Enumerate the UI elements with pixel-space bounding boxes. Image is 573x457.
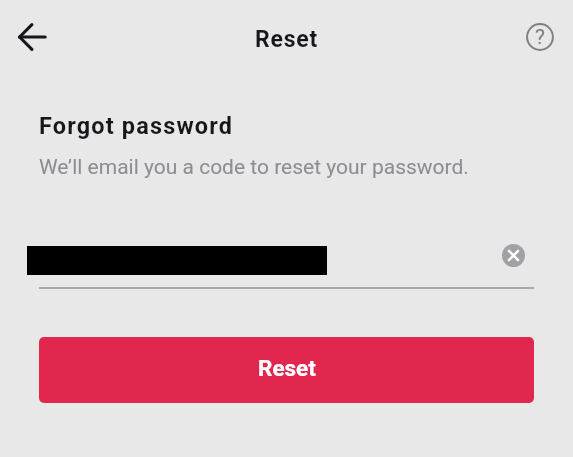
button[interactable]: Email address field (39, 231, 534, 287)
staticText: We’ll email you a code to reset your pas… (39, 155, 469, 180)
button[interactable]: Clear text (496, 238, 530, 272)
staticText: Forgot password (39, 112, 234, 140)
button[interactable]: Back (9, 14, 55, 60)
staticText: Reset (255, 26, 319, 53)
staticText: Reset (258, 355, 316, 381)
staticText: ? (535, 25, 545, 50)
button[interactable]: Help (520, 17, 560, 57)
button[interactable]: Reset (39, 337, 534, 403)
